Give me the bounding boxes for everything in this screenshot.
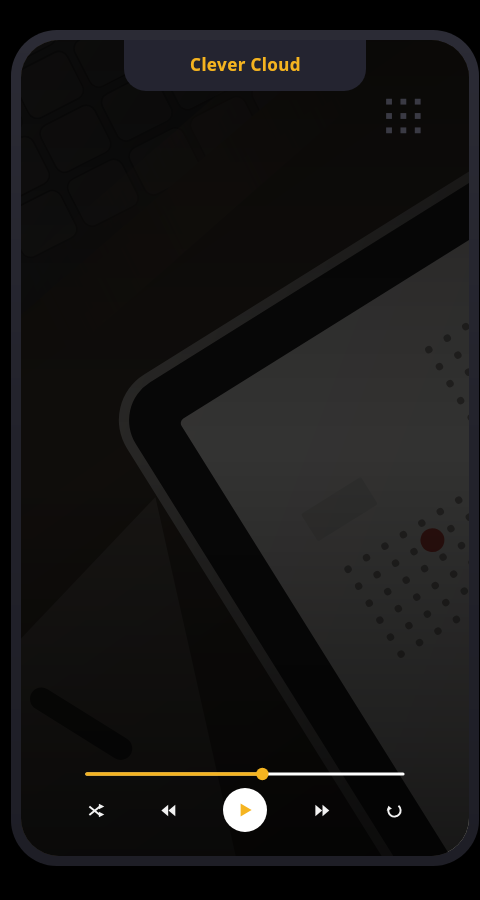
- button[interactable]: Repeat: [377, 793, 411, 827]
- button[interactable]: Next: [305, 793, 339, 827]
- button[interactable]: Play: [223, 788, 267, 832]
- button[interactable]: Previous: [151, 793, 185, 827]
- button[interactable]: Shuffle: [79, 793, 113, 827]
- staticText: Clever Cloud: [190, 53, 301, 76]
- button[interactable]: [87, 766, 403, 782]
